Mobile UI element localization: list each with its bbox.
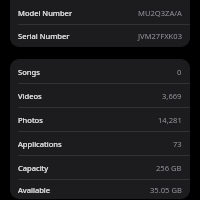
button[interactable]: Capacity: [10, 156, 190, 179]
button[interactable]: Available: [10, 180, 190, 199]
staticText: Photos: [18, 115, 43, 125]
staticText: Songs: [18, 67, 40, 77]
staticText: MU2Q3ZA/A: [138, 8, 182, 18]
button[interactable]: Applications: [10, 132, 190, 155]
staticText: Capacity: [18, 163, 49, 173]
staticText: 73: [173, 139, 182, 149]
button[interactable]: Photos: [10, 108, 190, 131]
staticText: Available: [18, 185, 51, 195]
staticText: 256 GB: [156, 163, 182, 173]
staticText: Applications: [18, 139, 62, 149]
staticText: 3,669: [162, 91, 182, 101]
button[interactable]: Model Number: [10, 1, 190, 24]
staticText: 14,281: [158, 115, 182, 125]
staticText: Videos: [18, 91, 42, 101]
staticText: 35.05 GB: [150, 185, 182, 195]
button[interactable]: Videos: [10, 84, 190, 107]
staticText: 0: [177, 67, 182, 77]
staticText: Serial Number: [18, 31, 70, 41]
button[interactable]: Serial Number: [10, 25, 190, 47]
staticText: Model Number: [18, 8, 73, 18]
staticText: JVM27FXK03: [138, 31, 182, 41]
button[interactable]: Songs: [10, 60, 190, 83]
